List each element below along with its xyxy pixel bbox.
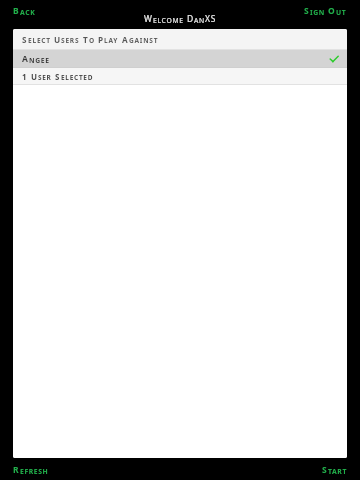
- staticText: ELCOME: [153, 16, 184, 25]
- staticText: T: [83, 34, 89, 45]
- staticText: XS: [205, 13, 217, 25]
- staticText: ELECTED: [61, 73, 94, 82]
- staticText: S: [322, 464, 328, 476]
- staticText: NGEE: [29, 56, 50, 65]
- button[interactable]: A: [13, 50, 347, 67]
- staticText: B: [13, 5, 20, 17]
- staticText: S: [304, 5, 310, 17]
- button[interactable]: S: [301, 3, 350, 19]
- staticText: 1: [22, 71, 28, 82]
- staticText: U: [54, 34, 61, 45]
- staticText: ELECT: [28, 36, 51, 45]
- staticText: TART: [328, 467, 347, 476]
- staticText: IGN: [310, 8, 325, 17]
- staticText: R: [13, 464, 20, 476]
- staticText: LAY: [104, 36, 119, 45]
- staticText: AN: [194, 16, 205, 25]
- button[interactable]: S: [319, 462, 350, 478]
- staticText: A: [122, 34, 129, 45]
- staticText: W: [144, 13, 153, 25]
- staticText: UT: [336, 8, 347, 17]
- staticText: P: [98, 34, 104, 45]
- staticText: S: [55, 71, 61, 82]
- button[interactable]: R: [10, 462, 52, 478]
- staticText: SERS: [61, 36, 80, 45]
- other: Selected: [329, 54, 339, 64]
- staticText: S: [22, 34, 28, 45]
- staticText: SER: [38, 73, 52, 82]
- button[interactable]: B: [10, 3, 39, 19]
- staticText: ACK: [20, 8, 36, 17]
- staticText: O: [328, 5, 336, 17]
- staticText: U: [31, 71, 38, 82]
- staticText: A: [22, 53, 29, 65]
- staticText: GAINST: [129, 36, 159, 45]
- staticText: O: [89, 36, 95, 45]
- staticText: EFRESH: [20, 467, 49, 476]
- staticText: D: [187, 13, 194, 25]
